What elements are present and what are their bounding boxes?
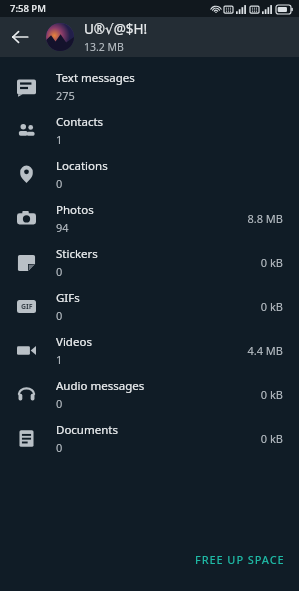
staticText: 0 <box>56 308 63 323</box>
staticText: 94 <box>56 220 69 235</box>
staticText: 1 <box>56 352 63 367</box>
staticText: Stickers <box>56 246 98 262</box>
staticText: 0 kB <box>260 299 283 314</box>
button[interactable]: Photos <box>0 196 299 240</box>
button[interactable]: Documents <box>0 416 299 460</box>
staticText: 13.2 MB <box>84 40 124 54</box>
staticText: 0 kB <box>260 431 283 446</box>
staticText: 0 <box>56 176 63 191</box>
button[interactable]: Stickers <box>0 240 299 284</box>
staticText: 7:58 PM <box>10 2 46 15</box>
button[interactable]: Locations <box>0 152 299 196</box>
button[interactable]: GIF <box>0 284 299 328</box>
staticText: 0 <box>56 264 63 279</box>
staticText: Contacts <box>56 114 104 130</box>
button[interactable]: Back <box>0 17 40 57</box>
staticText: 0 kB <box>260 387 283 402</box>
button[interactable]: Videos <box>0 328 299 372</box>
staticText: Documents <box>56 422 118 438</box>
staticText: GIFs <box>56 290 80 306</box>
button[interactable]: Text messages <box>0 64 299 108</box>
staticText: Videos <box>56 334 92 350</box>
button[interactable]: Audio messages <box>0 372 299 416</box>
staticText: GIF <box>21 302 33 312</box>
staticText: 1 <box>56 132 63 147</box>
staticText: U®√@$H! <box>84 20 148 38</box>
button[interactable]: FREE UP SPACE <box>181 542 299 577</box>
staticText: FREE UP SPACE <box>195 552 285 567</box>
button[interactable]: Contacts <box>0 108 299 152</box>
staticText: Text messages <box>56 70 135 86</box>
staticText: Photos <box>56 202 94 218</box>
staticText: 0 <box>56 440 63 455</box>
button[interactable]: Contact avatar <box>46 23 74 51</box>
staticText: Audio messages <box>56 378 145 394</box>
staticText: 275 <box>56 88 75 103</box>
staticText: 4.4 MB <box>247 343 283 358</box>
staticText: 0 <box>56 396 63 411</box>
staticText: 0 kB <box>260 255 283 270</box>
staticText: Locations <box>56 158 108 174</box>
staticText: 8.8 MB <box>247 211 283 226</box>
